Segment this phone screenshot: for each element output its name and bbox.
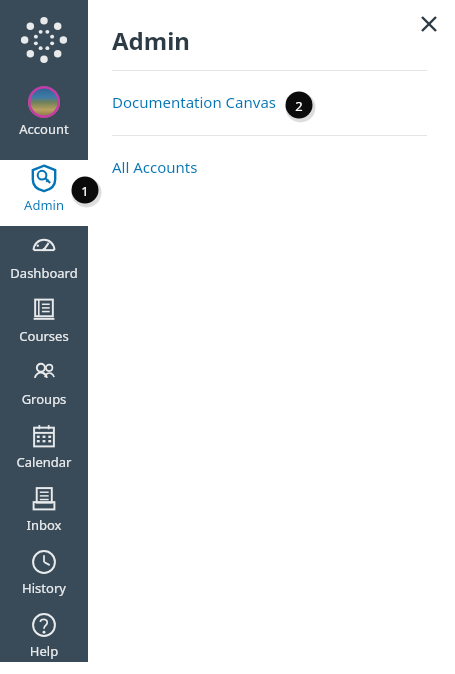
staticText: History	[0, 579, 88, 597]
staticText: 2	[284, 97, 314, 115]
staticText: Documentation Canvas	[112, 92, 276, 112]
button[interactable]: Canvas home	[22, 18, 66, 62]
button[interactable]: Documentation Canvas	[112, 92, 282, 116]
staticText: Inbox	[0, 516, 88, 534]
button[interactable]: Calendar	[0, 421, 88, 481]
button[interactable]: Groups	[0, 358, 88, 418]
button[interactable]: Close	[412, 7, 446, 41]
staticText: Calendar	[0, 453, 88, 471]
button[interactable]: Help	[0, 610, 88, 670]
button[interactable]: Inbox	[0, 484, 88, 544]
button[interactable]: Courses	[0, 295, 88, 355]
staticText: All Accounts	[112, 157, 198, 177]
staticText: 1	[70, 182, 100, 200]
staticText: Groups	[0, 390, 88, 408]
staticText: Account	[0, 120, 88, 138]
staticText: Admin	[0, 196, 88, 214]
button[interactable]: History	[0, 547, 88, 607]
button[interactable]: Account	[0, 84, 88, 144]
staticText: Courses	[0, 327, 88, 345]
button[interactable]: All Accounts	[112, 157, 222, 181]
staticText: Admin	[112, 24, 190, 57]
button[interactable]: Dashboard	[0, 232, 88, 292]
button[interactable]: Admin	[0, 160, 88, 226]
staticText: Dashboard	[0, 264, 88, 282]
staticText: Help	[0, 642, 88, 660]
